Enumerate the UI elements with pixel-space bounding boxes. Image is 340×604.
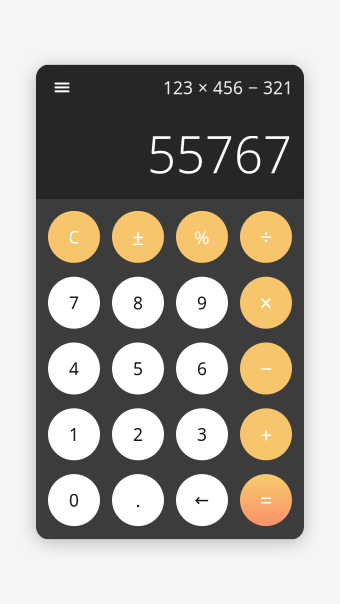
- button[interactable]: 1: [48, 408, 100, 460]
- button[interactable]: ←: [176, 474, 228, 526]
- button[interactable]: −: [240, 342, 292, 394]
- button[interactable]: +: [240, 408, 292, 460]
- staticText: 4: [69, 357, 79, 380]
- button[interactable]: ±: [112, 211, 164, 263]
- button[interactable]: 3: [176, 408, 228, 460]
- staticText: .: [135, 488, 140, 512]
- button[interactable]: C: [48, 211, 100, 263]
- staticText: =: [260, 486, 272, 514]
- button[interactable]: Menu: [50, 76, 74, 98]
- button[interactable]: ÷: [240, 211, 292, 263]
- button[interactable]: 9: [176, 277, 228, 329]
- staticText: 5: [133, 357, 143, 380]
- staticText: 8: [133, 291, 143, 314]
- button[interactable]: 8: [112, 277, 164, 329]
- button[interactable]: =: [240, 474, 292, 526]
- button[interactable]: 2: [112, 408, 164, 460]
- button[interactable]: 7: [48, 277, 100, 329]
- staticText: 1: [69, 423, 79, 446]
- staticText: 3: [197, 423, 207, 446]
- staticText: 123 × 456 − 321: [163, 76, 293, 99]
- button[interactable]: 0: [48, 474, 100, 526]
- staticText: %: [194, 224, 210, 249]
- button[interactable]: 4: [48, 342, 100, 394]
- staticText: +: [260, 420, 272, 448]
- button[interactable]: 6: [176, 342, 228, 394]
- staticText: 0: [69, 489, 79, 512]
- staticText: −: [260, 354, 272, 383]
- staticText: ×: [259, 288, 272, 318]
- staticText: 2: [133, 423, 143, 446]
- staticText: 9: [197, 291, 207, 314]
- staticText: C: [68, 225, 79, 248]
- staticText: 55767: [147, 120, 292, 187]
- staticText: 6: [197, 357, 207, 380]
- staticText: ←: [194, 490, 209, 510]
- button[interactable]: ×: [240, 277, 292, 329]
- button[interactable]: %: [176, 211, 228, 263]
- button[interactable]: 5: [112, 342, 164, 394]
- button[interactable]: .: [112, 474, 164, 526]
- staticText: ±: [132, 223, 144, 251]
- staticText: ÷: [260, 223, 272, 251]
- staticText: 7: [69, 291, 79, 314]
